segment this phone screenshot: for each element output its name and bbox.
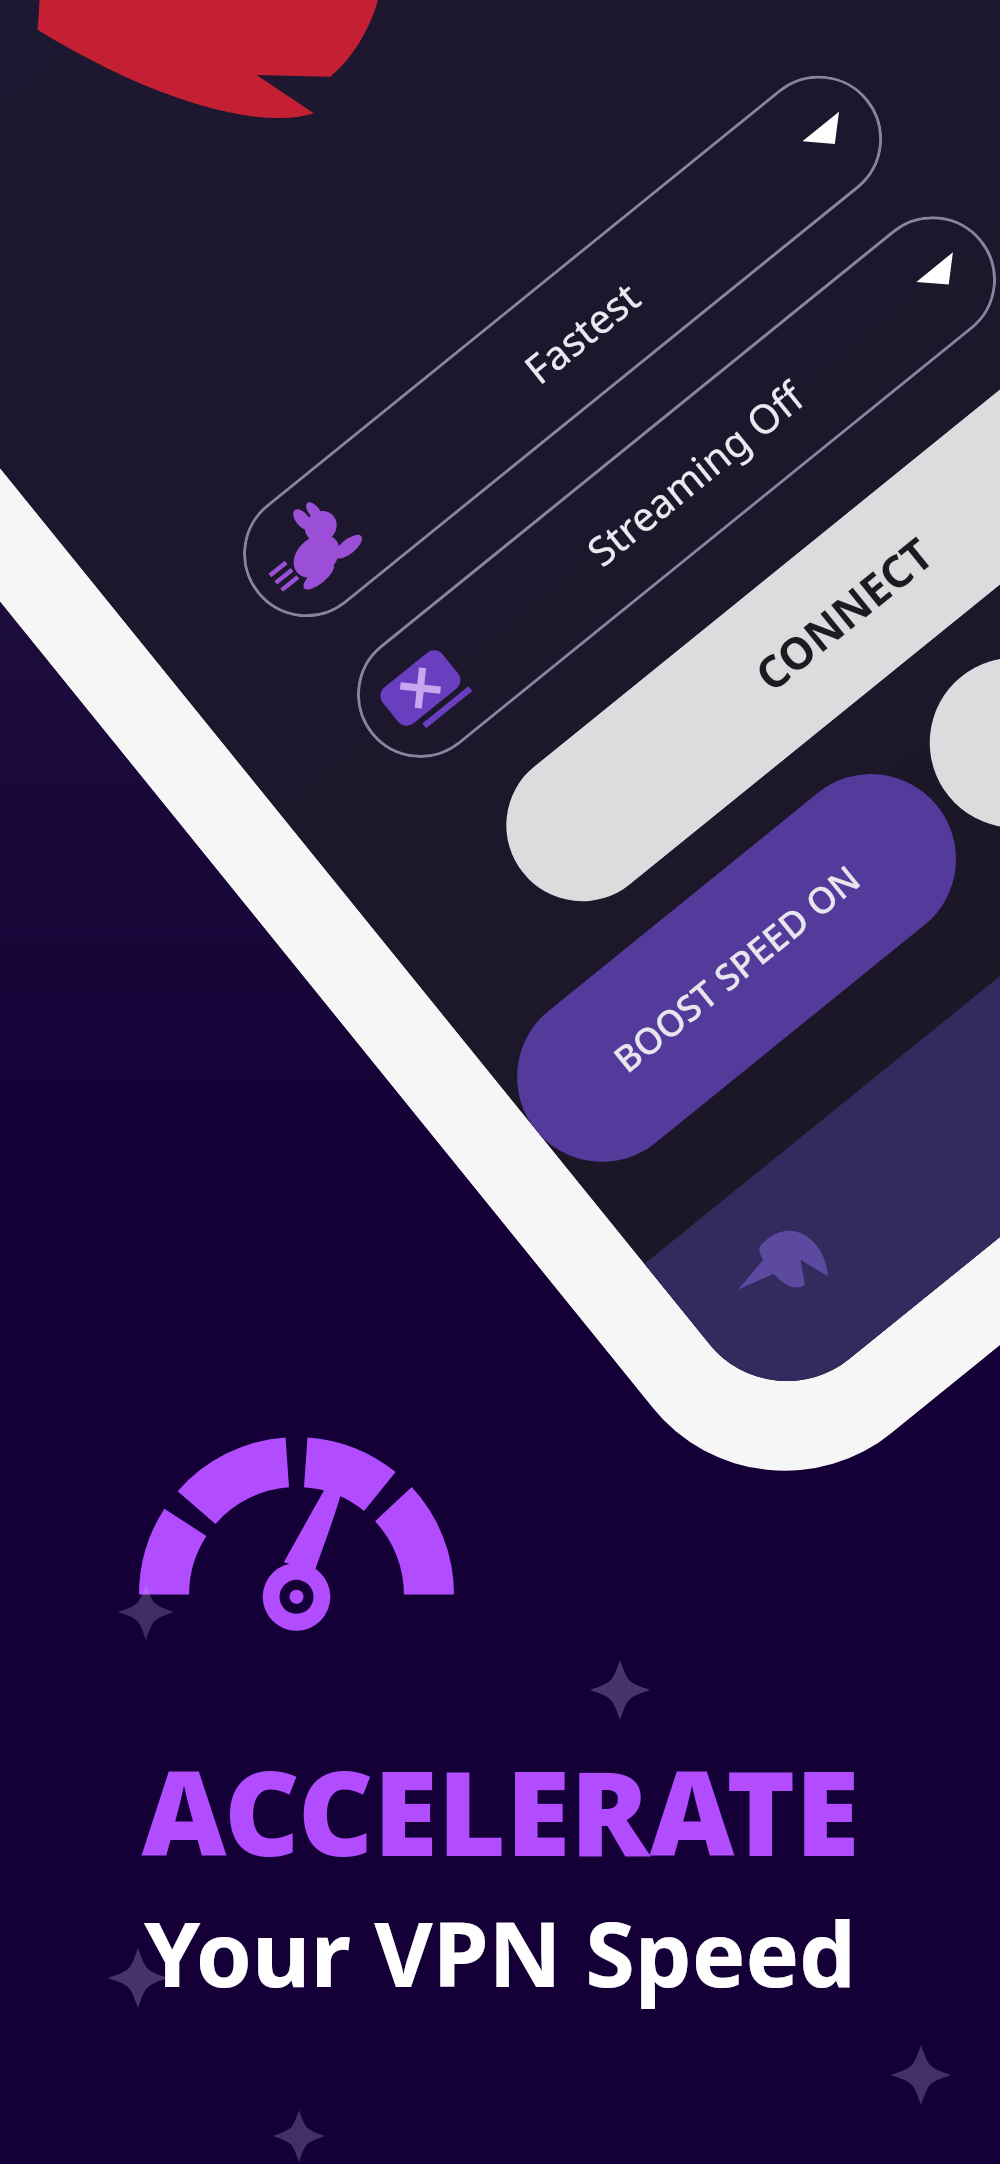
staticText: BOOST SPEED ON [603,854,870,1083]
button[interactable]: BOOST SPEED ON [482,739,990,1196]
staticText: Fastest [512,269,650,395]
staticText: Your VPN Speed [144,1891,856,2014]
button[interactable]: CONNECT [475,295,1000,932]
button[interactable]: Streaming Off [331,190,1000,784]
staticText: CONNECT [742,524,945,704]
staticText: ACCELERATE [141,1731,860,1890]
button[interactable]: Fastest [217,50,908,643]
button[interactable]: More options [895,623,1000,862]
staticText: Streaming Off [575,369,814,577]
button[interactable]: Home [710,1195,851,1336]
